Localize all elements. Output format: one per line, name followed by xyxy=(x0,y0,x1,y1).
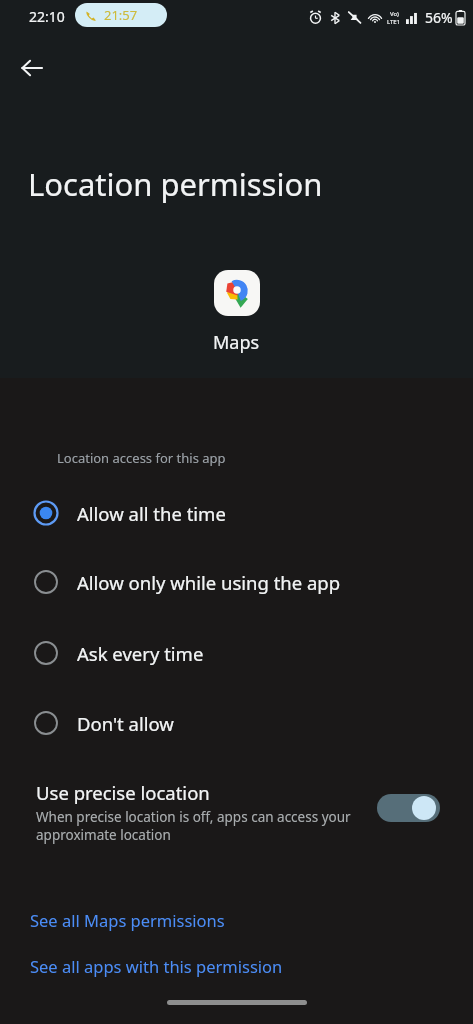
staticText: Vo) xyxy=(390,10,399,18)
staticText: Allow all the time xyxy=(77,501,226,526)
staticText: See all Maps permissions xyxy=(30,909,225,931)
staticText: LTE1 xyxy=(387,18,401,26)
button[interactable]: Don't allow xyxy=(0,700,473,746)
button[interactable]: See all Maps permissions xyxy=(0,903,473,943)
staticText: Location access for this app xyxy=(57,449,226,467)
staticText: When precise location is off, apps can a… xyxy=(36,808,369,844)
button[interactable]: Back xyxy=(12,48,52,88)
staticText: Maps xyxy=(213,330,260,355)
button[interactable]: Ask every time xyxy=(0,630,473,676)
staticText: Allow only while using the app xyxy=(77,570,341,595)
staticText: Ask every time xyxy=(77,641,204,666)
staticText: 56% xyxy=(425,8,453,27)
button[interactable]: See all apps with this permission xyxy=(0,949,473,989)
staticText: Location permission xyxy=(28,163,323,205)
staticText: See all apps with this permission xyxy=(30,955,283,977)
button[interactable]: Allow all the time xyxy=(0,490,473,536)
button[interactable]: Use precise location xyxy=(0,775,473,859)
staticText: Don't allow xyxy=(77,711,174,736)
staticText: 21:57 xyxy=(104,6,138,24)
button[interactable]: Ongoing call xyxy=(75,3,167,27)
button[interactable]: Allow only while using the app xyxy=(0,559,473,605)
button[interactable]: Use precise location toggle xyxy=(377,794,440,822)
staticText: Use precise location xyxy=(36,780,210,805)
staticText: 22:10 xyxy=(29,7,65,26)
